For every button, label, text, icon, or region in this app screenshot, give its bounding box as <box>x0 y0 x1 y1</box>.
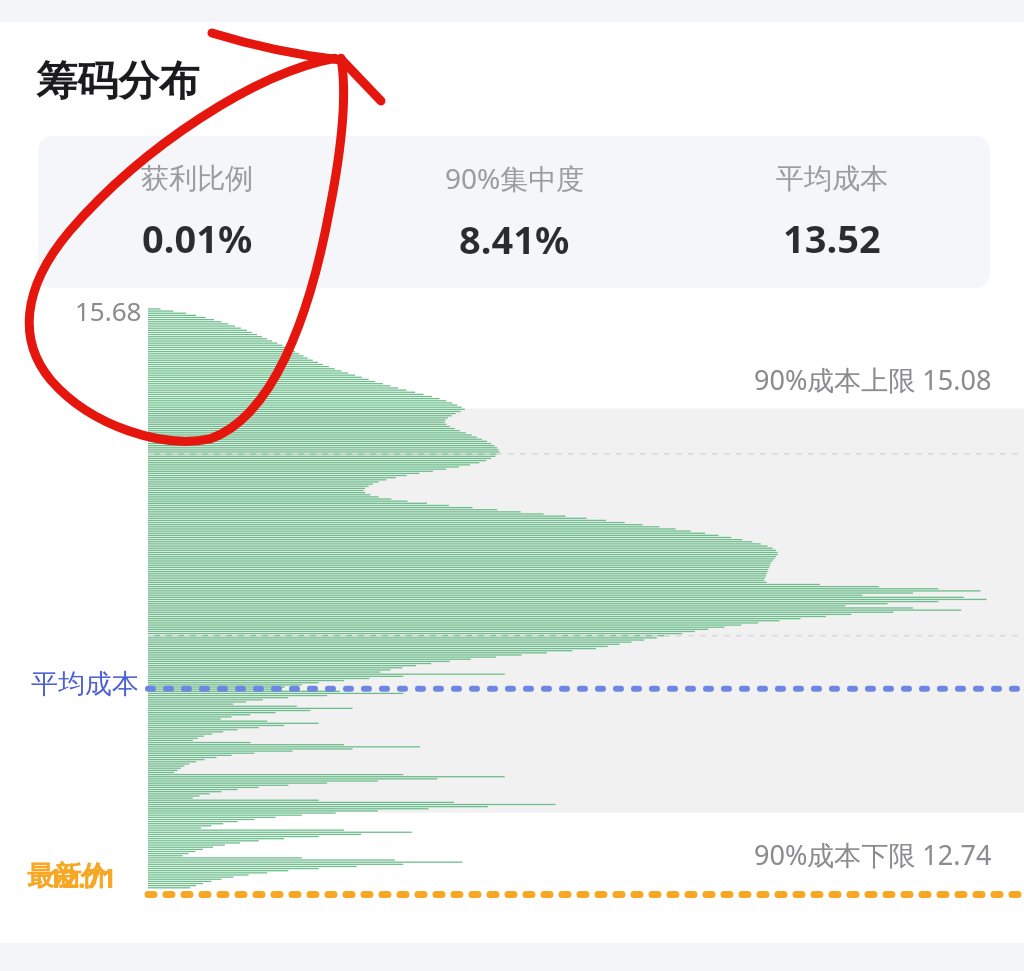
staticText: 15.68 <box>75 293 142 328</box>
button[interactable]: 获利比例 <box>38 136 990 288</box>
staticText: 12.71 <box>47 859 117 896</box>
staticText: 90%集中度 <box>445 159 585 197</box>
button[interactable]: 筹码分布图 <box>0 288 1024 943</box>
staticText: 获利比例 <box>141 161 253 196</box>
staticText: 8.41% <box>459 213 570 265</box>
staticText: 0.01% <box>142 212 253 264</box>
staticText: 90%成本下限 12.74 <box>754 836 992 873</box>
staticText: 13.52 <box>783 212 881 264</box>
button[interactable]: 筹码分布 <box>36 56 988 108</box>
staticText: 平均成本 <box>776 161 888 196</box>
staticText: 90%成本上限 15.08 <box>754 361 992 398</box>
staticText: 最新价 <box>27 859 108 893</box>
staticText: 平均成本 <box>31 667 139 701</box>
other: 筹码分布图 <box>0 288 1024 943</box>
staticText: 筹码分布 <box>36 56 200 108</box>
